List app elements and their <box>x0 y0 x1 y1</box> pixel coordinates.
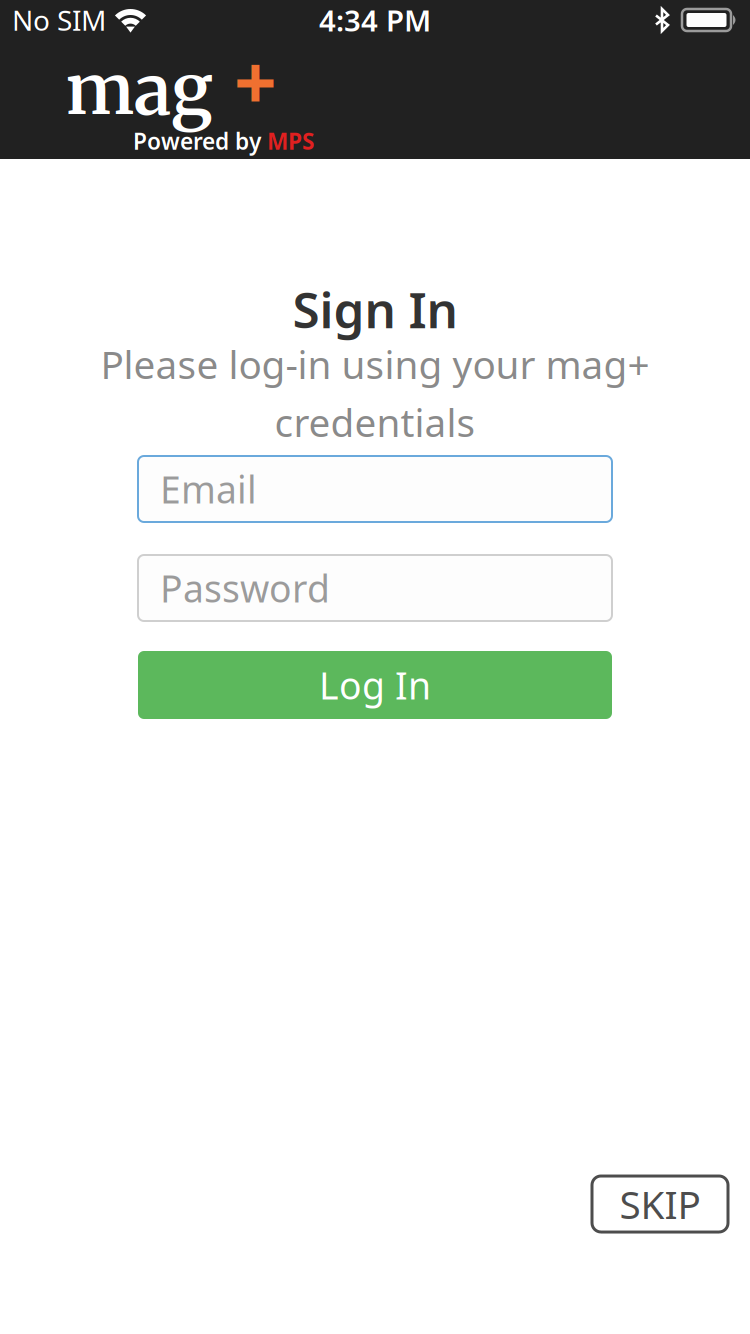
staticText: 4:34 PM <box>319 0 431 39</box>
staticText: Password <box>160 563 330 613</box>
staticText: SKIP <box>619 1178 700 1230</box>
staticText: Powered by <box>133 126 261 156</box>
button[interactable]: Email <box>138 456 612 522</box>
staticText: Log In <box>319 660 431 710</box>
button[interactable]: Log In <box>138 651 612 719</box>
staticText: Please log-in using your mag+ <box>100 338 649 390</box>
staticText: Email <box>160 464 257 514</box>
button[interactable]: Password <box>138 555 612 621</box>
staticText: credentials <box>274 396 475 448</box>
staticText: mag <box>66 45 213 134</box>
staticText: Sign In <box>292 276 457 342</box>
staticText: No SIM <box>12 1 106 39</box>
button[interactable]: SKIP <box>592 1176 728 1232</box>
staticText: + <box>234 31 277 130</box>
staticText: MPS <box>267 126 314 156</box>
